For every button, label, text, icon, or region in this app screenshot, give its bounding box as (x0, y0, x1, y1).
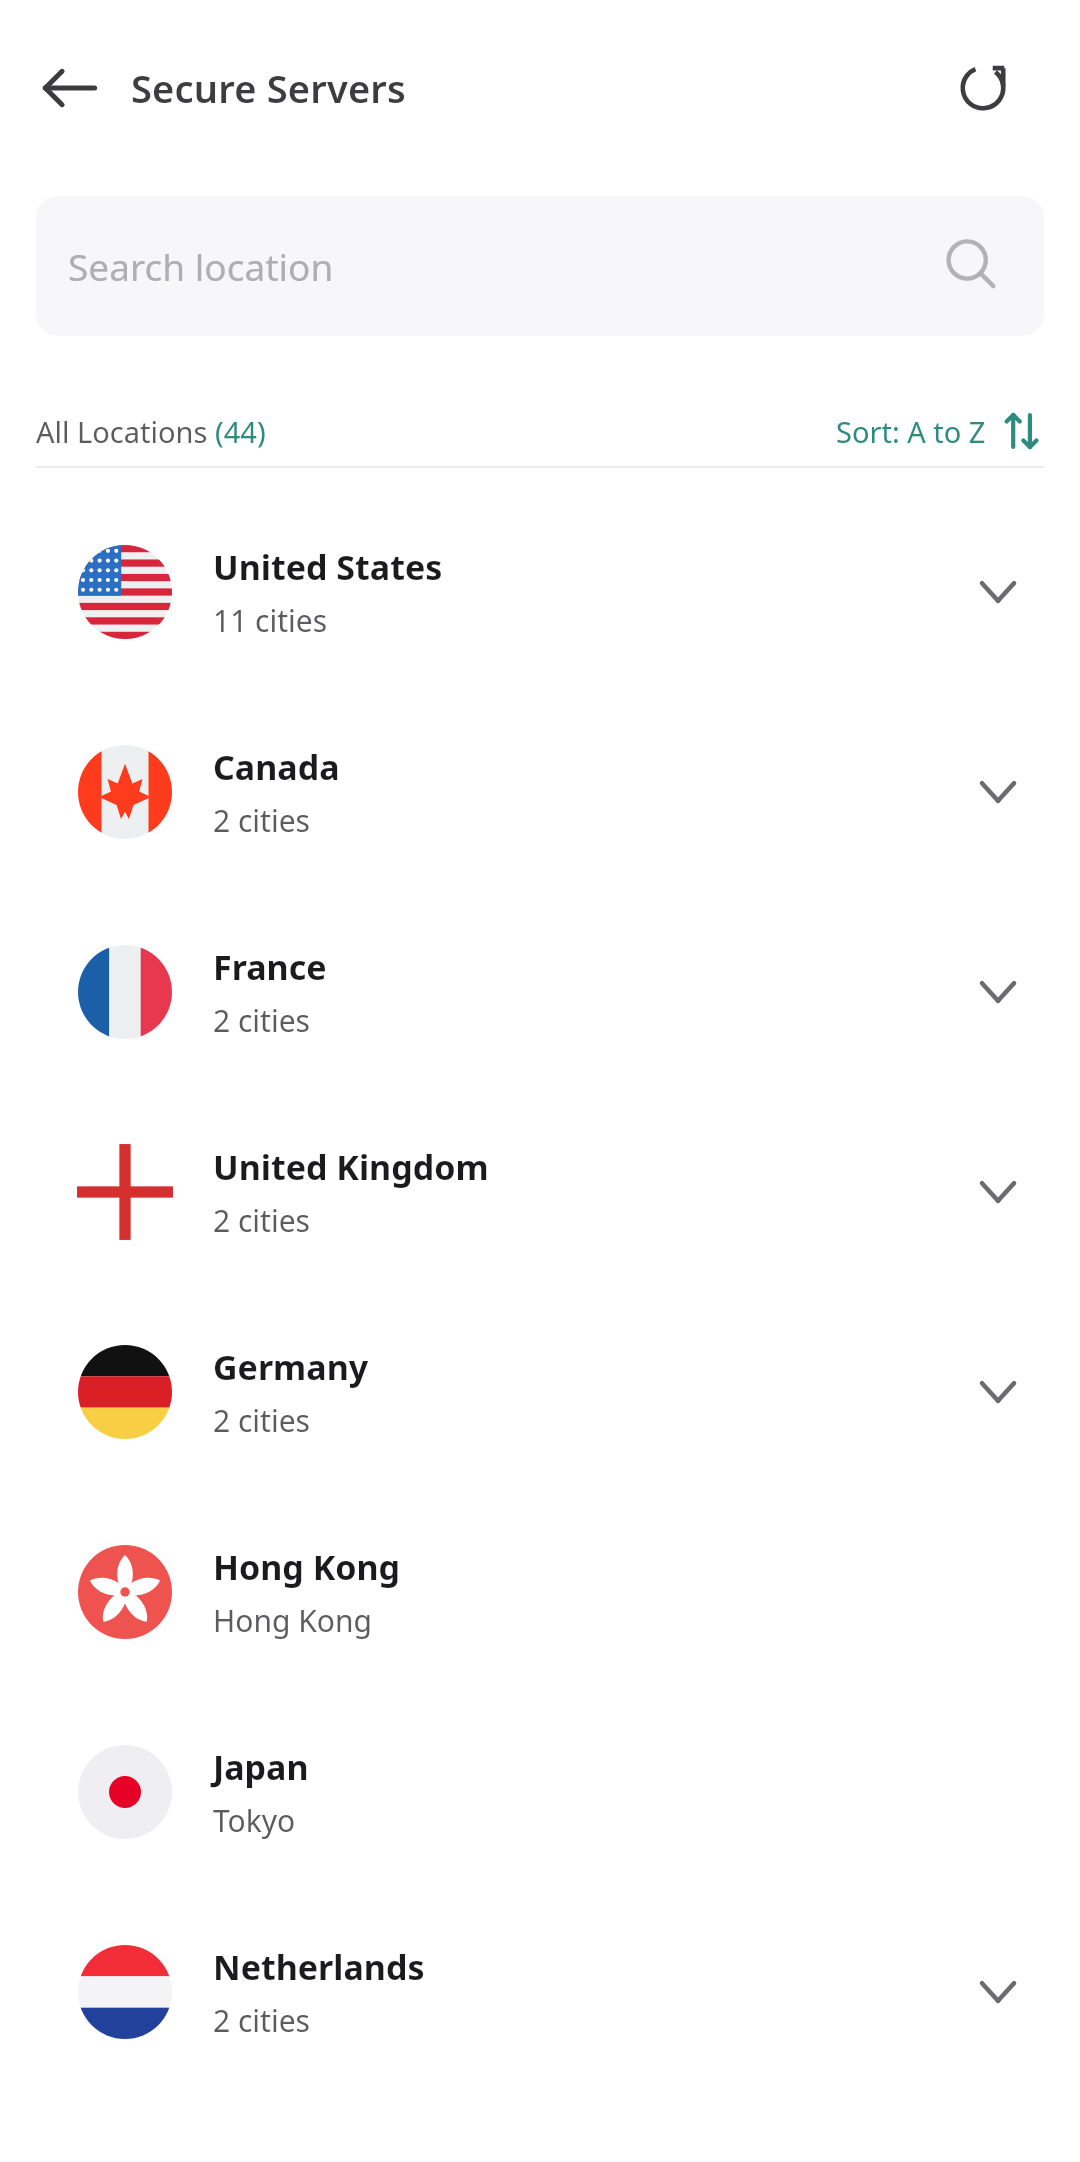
button[interactable]: Sort: A to Z (836, 411, 1044, 451)
staticText: 2 cities (213, 1000, 310, 1041)
button[interactable]: France (0, 892, 1080, 1092)
staticText: Sort: A to Z (836, 412, 986, 451)
button[interactable]: Search location (36, 196, 1044, 336)
button[interactable]: Hong Kong (0, 1492, 1080, 1692)
staticText: France (213, 944, 327, 990)
button[interactable]: Canada (0, 692, 1080, 892)
staticText: Hong Kong (213, 1544, 401, 1590)
button[interactable]: Netherlands (0, 1892, 1080, 2092)
staticText: 2 cities (213, 1400, 310, 1441)
button[interactable]: Japan (0, 1692, 1080, 1892)
staticText: Japan (213, 1744, 309, 1790)
staticText: 11 cities (213, 600, 328, 641)
button[interactable]: Back (26, 44, 114, 132)
button[interactable]: United Kingdom (0, 1092, 1080, 1292)
button[interactable]: Germany (0, 1292, 1080, 1492)
button[interactable]: All Locations (36, 412, 266, 451)
staticText: Canada (213, 744, 340, 790)
staticText: 2 cities (213, 1200, 310, 1241)
staticText: Secure Servers (131, 62, 406, 114)
staticText: Netherlands (213, 1944, 425, 1990)
staticText: United States (213, 544, 443, 590)
staticText: Tokyo (213, 1800, 296, 1841)
staticText: Search location (68, 241, 334, 291)
button[interactable]: Refresh (939, 44, 1027, 132)
staticText: Hong Kong (213, 1600, 372, 1641)
button[interactable]: United States (0, 492, 1080, 692)
staticText: Germany (213, 1344, 369, 1390)
staticText: (44) (215, 412, 266, 451)
staticText: United Kingdom (213, 1144, 489, 1190)
staticText: 2 cities (213, 800, 310, 841)
staticText: 2 cities (213, 2000, 310, 2041)
staticText: All Locations (36, 412, 215, 451)
